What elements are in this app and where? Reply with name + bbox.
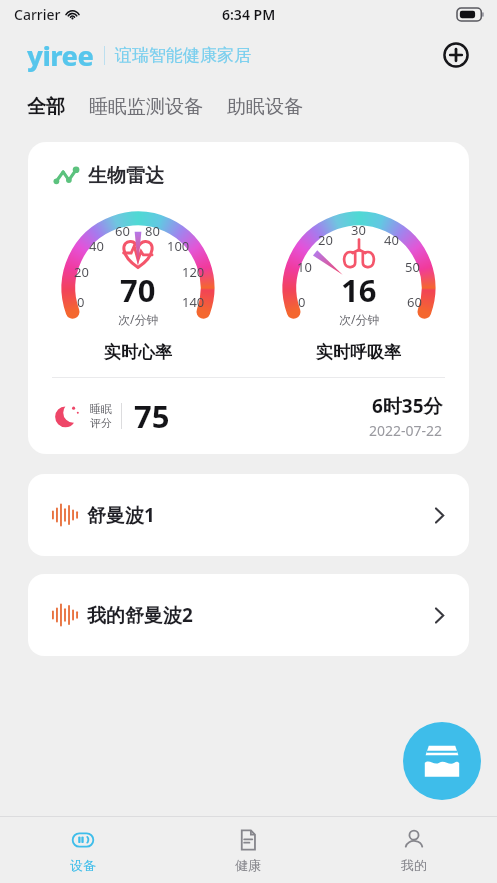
staticText: 实时呼吸率: [316, 342, 401, 363]
staticText: 40: [89, 237, 104, 255]
staticText: 设备: [70, 857, 96, 873]
staticText: 评分: [90, 416, 112, 430]
staticText: 舒曼波1: [87, 502, 155, 528]
staticText: 次/分钟: [118, 311, 159, 327]
staticText: 生物雷达: [88, 164, 164, 188]
button[interactable]: Add device: [438, 37, 474, 73]
staticText: 100: [167, 237, 190, 255]
staticText: 16: [341, 269, 377, 311]
staticText: 140: [182, 293, 205, 311]
staticText: 80: [145, 222, 160, 240]
staticText: 50: [405, 258, 420, 276]
staticText: Carrier: [14, 5, 61, 24]
button[interactable]: 全部: [25, 90, 67, 124]
button[interactable]: 健康: [165, 817, 331, 883]
staticText: 75: [134, 395, 170, 437]
staticText: 20: [74, 263, 89, 281]
staticText: 10: [297, 258, 312, 276]
staticText: yiree: [27, 37, 94, 74]
staticText: 120: [182, 263, 205, 281]
button[interactable]: 舒曼波1: [28, 474, 469, 556]
staticText: 20: [318, 231, 333, 249]
button[interactable]: 我的: [331, 817, 497, 883]
staticText: 0: [298, 293, 306, 311]
button[interactable]: 助眠设备: [225, 90, 305, 124]
staticText: 睡眠监测设备: [89, 95, 203, 119]
staticText: 6:34 PM: [222, 5, 276, 24]
staticText: 睡眠: [90, 402, 112, 416]
staticText: 30: [351, 221, 366, 239]
button[interactable]: 睡眠监测设备: [87, 90, 205, 124]
staticText: 2022-07-22: [369, 421, 443, 440]
staticText: 6时35分: [372, 393, 443, 419]
button[interactable]: 设备: [0, 817, 165, 883]
staticText: 次/分钟: [339, 311, 380, 327]
staticText: 健康: [235, 857, 261, 873]
button[interactable]: 生物雷达: [28, 142, 469, 454]
staticText: 我的舒曼波2: [87, 602, 193, 628]
staticText: 谊瑞智能健康家居: [115, 45, 251, 66]
staticText: 0: [77, 293, 85, 311]
staticText: 实时心率: [104, 342, 172, 363]
staticText: 60: [115, 222, 130, 240]
staticText: 我的: [401, 857, 427, 873]
staticText: 70: [120, 269, 156, 311]
staticText: 40: [384, 231, 399, 249]
staticText: 60: [407, 293, 422, 311]
staticText: 全部: [27, 95, 65, 119]
staticText: 助眠设备: [227, 95, 303, 119]
button[interactable]: 我的舒曼波2: [28, 574, 469, 656]
button[interactable]: Shop: [403, 722, 481, 800]
